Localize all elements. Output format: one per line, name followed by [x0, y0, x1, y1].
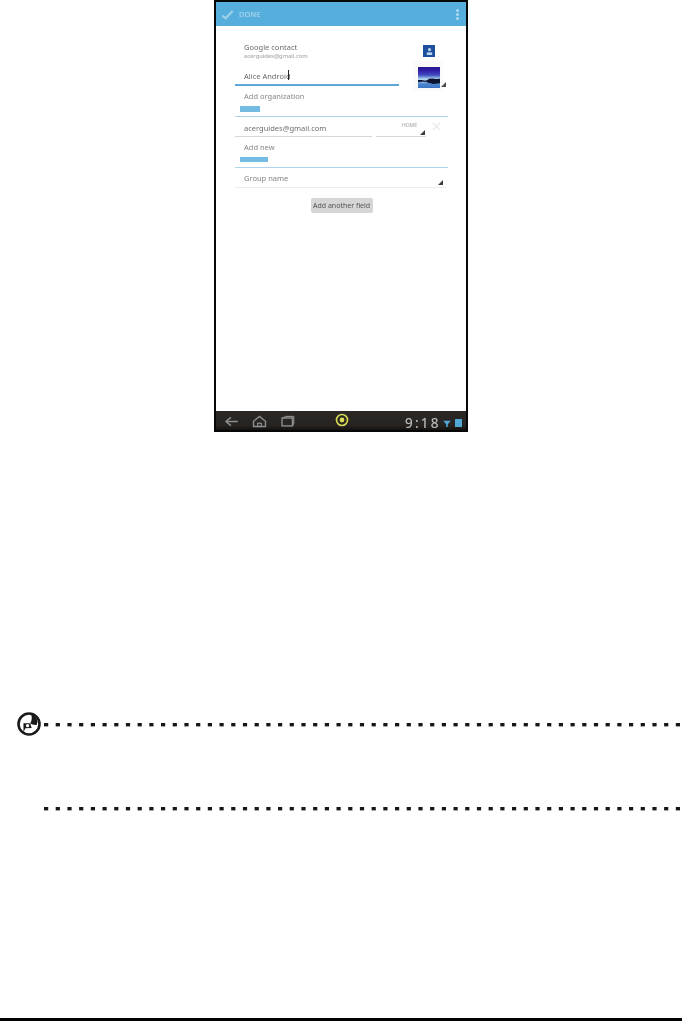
staticText: Google contact — [244, 42, 298, 52]
staticText: HOME — [402, 122, 417, 129]
button[interactable]: Google contact — [244, 42, 394, 60]
button[interactable]: Account — [423, 45, 435, 57]
staticText: acerguides@gmail.com — [244, 52, 308, 60]
button[interactable]: Recents — [279, 412, 295, 430]
button[interactable]: Contact photo — [418, 67, 440, 88]
button[interactable]: Screenshot — [335, 413, 349, 427]
button[interactable]: Back — [223, 412, 239, 430]
button[interactable]: Alice Android — [244, 71, 291, 81]
staticText: Add another field — [313, 201, 371, 211]
button[interactable]: Home — [251, 412, 267, 430]
button[interactable]: Add another field — [311, 198, 373, 213]
button[interactable]: HOME — [376, 120, 426, 137]
button[interactable]: DONE — [216, 2, 268, 26]
button[interactable]: Add organization — [244, 91, 305, 101]
button[interactable]: More options — [448, 2, 466, 26]
staticText: DONE — [239, 9, 261, 19]
button[interactable]: Group name — [244, 173, 289, 183]
button[interactable]: Add new — [244, 142, 275, 152]
button[interactable]: Remove email — [430, 120, 443, 133]
button[interactable]: acerguides@gmail.com — [244, 123, 327, 133]
staticText: 9:18 — [405, 414, 441, 432]
